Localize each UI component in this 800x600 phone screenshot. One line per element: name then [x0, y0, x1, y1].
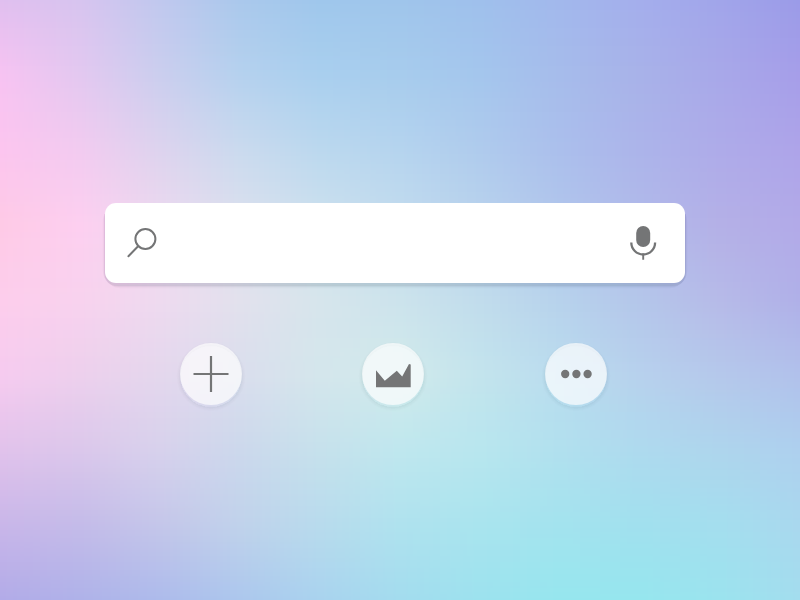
- button[interactable]: Trending: [362, 343, 424, 405]
- button[interactable]: More options: [545, 343, 607, 405]
- button[interactable]: Add: [180, 343, 242, 405]
- button[interactable]: [105, 203, 685, 283]
